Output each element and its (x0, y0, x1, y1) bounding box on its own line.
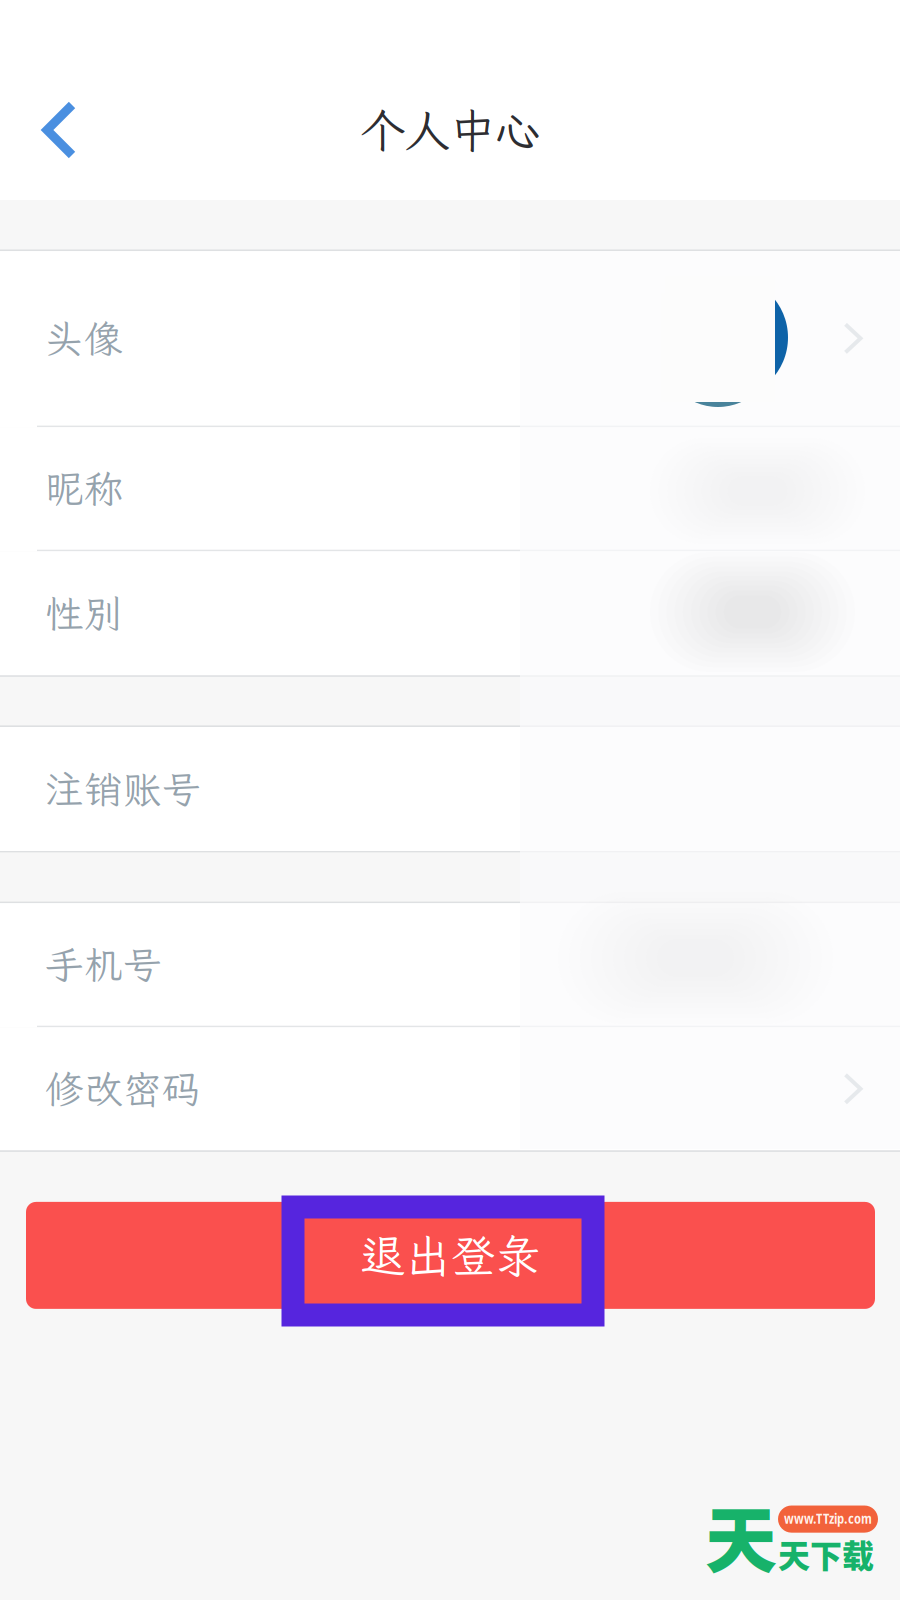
button[interactable]: 头像 (0, 251, 900, 427)
staticText: 注销账号 (45, 763, 201, 814)
staticText: 修改密码 (45, 1063, 201, 1114)
button[interactable]: 注销账号 (0, 727, 900, 851)
staticText: 昵称 (45, 463, 123, 514)
staticText: 退出登录 (360, 1225, 540, 1285)
staticText: 头像 (45, 313, 123, 364)
button[interactable]: Back (0, 75, 108, 185)
staticText: www.TTzip.com (784, 1509, 872, 1528)
button[interactable]: 性别 (0, 551, 900, 675)
button[interactable]: 修改密码 (0, 1027, 900, 1150)
staticText: 性别 (45, 588, 123, 639)
staticText: 天下载 (778, 1531, 874, 1577)
staticText: 手机号 (45, 939, 162, 990)
staticText: 个人中心 (360, 100, 540, 160)
staticText: 天 (705, 1483, 777, 1587)
button[interactable]: 退出登录 (0, 1152, 900, 1309)
button[interactable]: 昵称 (0, 427, 900, 551)
button[interactable]: 手机号 (0, 903, 900, 1027)
